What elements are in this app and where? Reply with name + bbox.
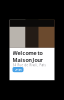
staticText: OPEN [14,68,21,71]
staticText: 34 Rue de Rivoli, Paris [12,63,45,67]
staticText: Welcome to Maison Jour [12,49,42,63]
